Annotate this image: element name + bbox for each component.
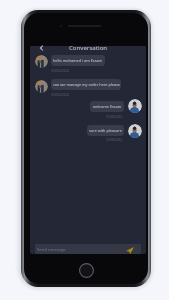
staticText: sure with pleasure [89, 128, 122, 133]
staticText: hello mohamed i am Essam [53, 58, 103, 63]
staticText: 03/06/2022 [106, 114, 124, 118]
staticText: can we manage my order here please [53, 82, 120, 87]
staticText: 03/06/2022 [51, 92, 70, 97]
button[interactable]: Back [38, 45, 45, 51]
button[interactable]: Send message [35, 244, 141, 254]
staticText: Conversation [69, 44, 108, 51]
button[interactable]: Send [126, 247, 134, 254]
staticText: 03/06/2022 [106, 137, 124, 141]
staticText: Send message [37, 247, 66, 253]
button[interactable]: hello mohamed i am Essam [51, 55, 105, 66]
button[interactable]: sure with pleasure [87, 125, 124, 136]
button[interactable]: welcome Essam [90, 101, 124, 112]
staticText: 03/06/2022 [51, 68, 70, 73]
button[interactable]: Home [78, 262, 95, 279]
button[interactable]: can we manage my order here please [51, 79, 121, 90]
staticText: welcome Essam [93, 104, 122, 109]
